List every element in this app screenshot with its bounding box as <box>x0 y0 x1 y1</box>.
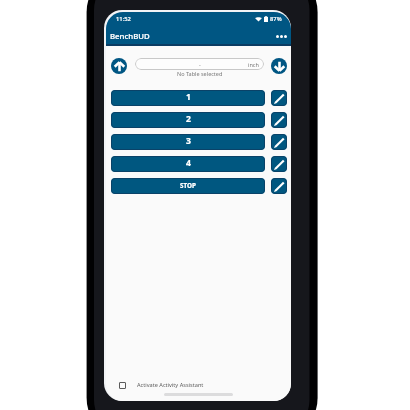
staticText: 2 <box>186 113 191 125</box>
staticText: 87% <box>270 15 282 23</box>
button[interactable]: 2 <box>111 112 265 128</box>
staticText: 4 <box>186 157 191 169</box>
button[interactable]: STOP <box>111 178 265 194</box>
staticText: No Table selected <box>177 70 223 77</box>
button[interactable]: Edit STOP <box>271 178 287 194</box>
staticText: 1 <box>186 91 191 103</box>
button[interactable]: Move up <box>111 58 127 74</box>
staticText: BenchBUD <box>110 31 150 42</box>
staticText: STOP <box>180 181 196 190</box>
button[interactable]: 4 <box>111 156 265 172</box>
button[interactable]: Edit 1 <box>271 90 287 106</box>
staticText: inch <box>248 61 259 68</box>
staticText: Activate Activity Assistant <box>137 381 204 389</box>
button[interactable]: More options <box>272 26 291 46</box>
staticText: 11:52 <box>116 15 131 23</box>
button[interactable]: - <box>135 58 264 70</box>
button[interactable]: Activate Activity Assistant <box>106 378 291 392</box>
button[interactable]: Edit 3 <box>271 134 287 150</box>
button[interactable]: Edit 4 <box>271 156 287 172</box>
staticText: 3 <box>186 135 191 147</box>
button[interactable]: 3 <box>111 134 265 150</box>
staticText: - <box>199 61 201 68</box>
button[interactable]: Move down <box>271 58 287 74</box>
button[interactable]: 1 <box>111 90 265 106</box>
button[interactable]: Edit 2 <box>271 112 287 128</box>
